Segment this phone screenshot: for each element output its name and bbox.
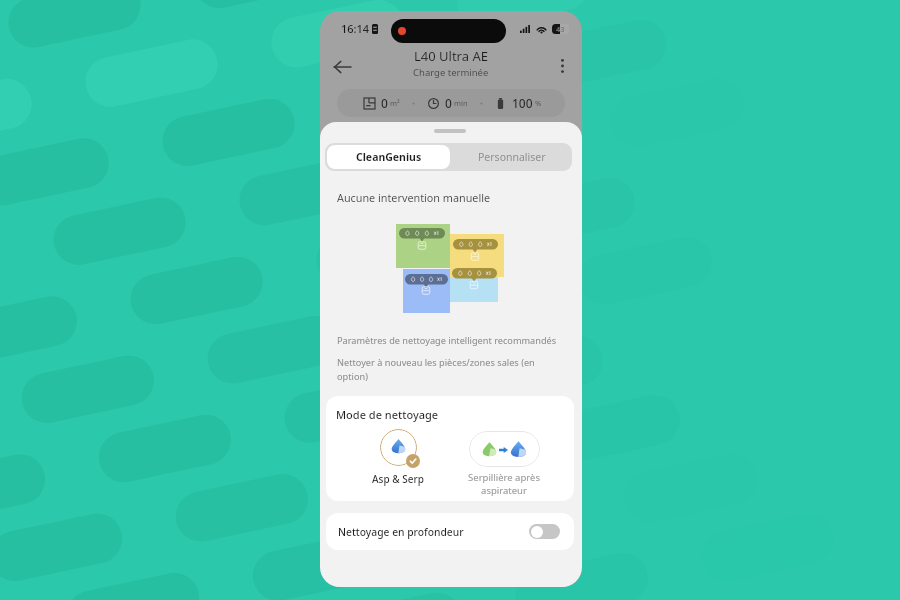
staticText: Paramètres de nettoyage intelligent reco… — [337, 334, 557, 347]
staticText: Aucune intervention manuelle — [337, 190, 491, 205]
staticText: Personnaliser — [478, 150, 546, 164]
button[interactable]: More options — [551, 55, 573, 77]
staticText: Nettoyage en profondeur — [338, 525, 464, 539]
staticText: m² — [390, 98, 400, 108]
button[interactable]: Serpillière après aspirateur — [463, 431, 545, 497]
button[interactable]: 100 — [495, 95, 542, 111]
staticText: CleanGenius — [356, 150, 422, 164]
staticText: Charge terminée — [413, 66, 489, 79]
staticText: 16:14 — [341, 21, 370, 36]
staticText: min — [454, 98, 468, 108]
staticText: Serpillière après aspirateur — [468, 471, 540, 497]
staticText: Nettoyer à nouveau les pièces/zones sale… — [337, 356, 539, 382]
button[interactable]: Nettoyage en profondeur — [326, 513, 574, 550]
button[interactable]: Back — [327, 52, 357, 82]
staticText: Mode de nettoyage — [336, 407, 439, 422]
staticText: Asp & Serp — [372, 472, 424, 486]
staticText: 43 — [556, 24, 565, 34]
button[interactable]: Personnaliser — [452, 143, 572, 171]
staticText: 100 — [512, 95, 533, 111]
button[interactable]: CleanGenius — [327, 145, 450, 169]
button[interactable]: 0 — [364, 95, 400, 111]
button[interactable]: Asp & Serp — [359, 429, 437, 486]
staticText: 0 — [381, 95, 388, 111]
staticText: % — [535, 98, 542, 108]
staticText: L40 Ultra AE — [414, 47, 488, 65]
staticText: 0 — [445, 95, 452, 111]
button[interactable]: 0 — [428, 95, 468, 111]
